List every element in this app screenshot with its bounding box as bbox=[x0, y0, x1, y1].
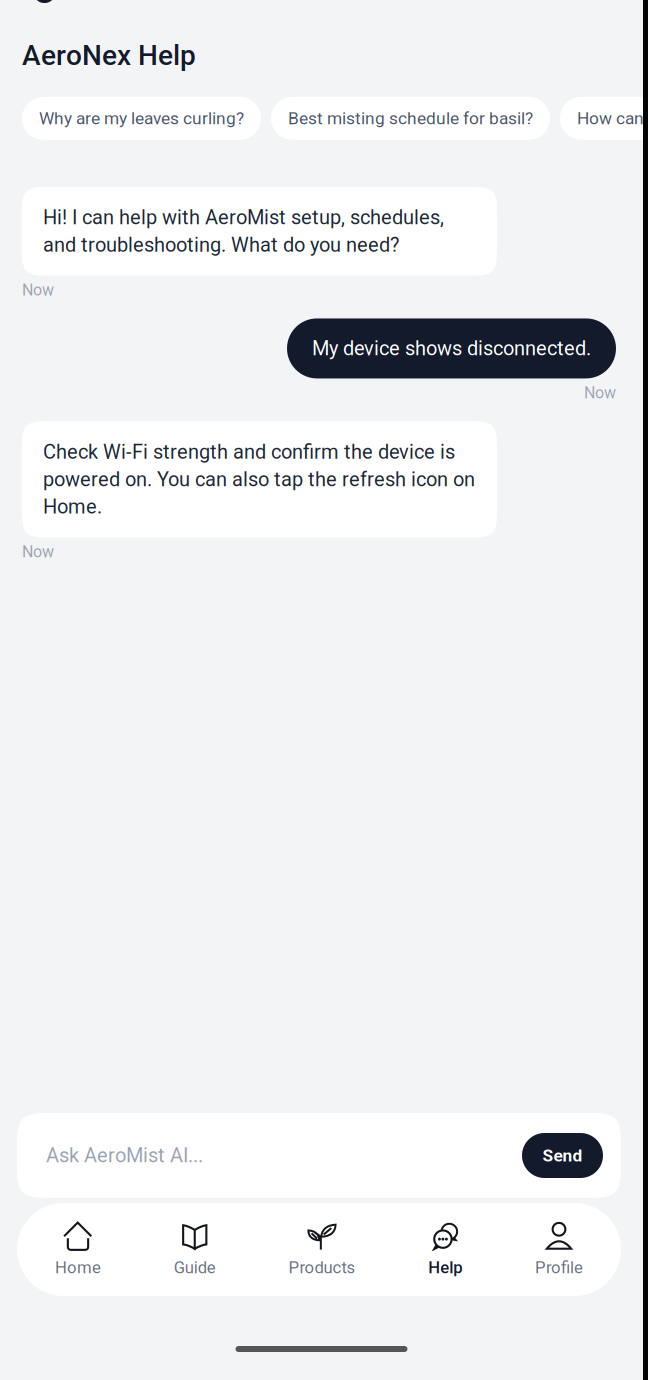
button[interactable]: Best misting schedule for basil? bbox=[271, 97, 550, 140]
staticText: Help bbox=[428, 1258, 462, 1277]
staticText: Now bbox=[22, 542, 54, 561]
button[interactable]: Why are my leaves curling? bbox=[22, 97, 261, 140]
staticText: Products bbox=[288, 1258, 355, 1277]
staticText: Why are my leaves curling? bbox=[39, 108, 244, 128]
staticText: How can I clean the nozzles? bbox=[577, 108, 648, 128]
button[interactable]: Guide bbox=[174, 1203, 216, 1296]
button[interactable]: Help bbox=[428, 1203, 462, 1296]
staticText: Check Wi-Fi strength and confirm the dev… bbox=[43, 440, 475, 518]
staticText: Send bbox=[542, 1145, 582, 1166]
staticText: Profile bbox=[535, 1258, 583, 1277]
button[interactable]: Send bbox=[522, 1133, 603, 1178]
staticText: Guide bbox=[174, 1258, 216, 1277]
staticText: Best misting schedule for basil? bbox=[288, 108, 533, 128]
staticText: Now bbox=[584, 383, 616, 402]
staticText: Hi! I can help with AeroMist setup, sche… bbox=[43, 206, 444, 257]
staticText: Home bbox=[55, 1258, 101, 1277]
button[interactable]: Products bbox=[288, 1203, 355, 1296]
staticText: Now bbox=[22, 281, 54, 299]
button[interactable]: Home bbox=[55, 1203, 101, 1296]
button[interactable]: Profile bbox=[535, 1203, 583, 1296]
button[interactable]: How can I clean the nozzles? bbox=[560, 97, 648, 140]
staticText: Ask AeroMist AI... bbox=[46, 1144, 203, 1167]
staticText: My device shows disconnected. bbox=[312, 337, 591, 360]
staticText: AeroNex Help bbox=[22, 39, 196, 72]
